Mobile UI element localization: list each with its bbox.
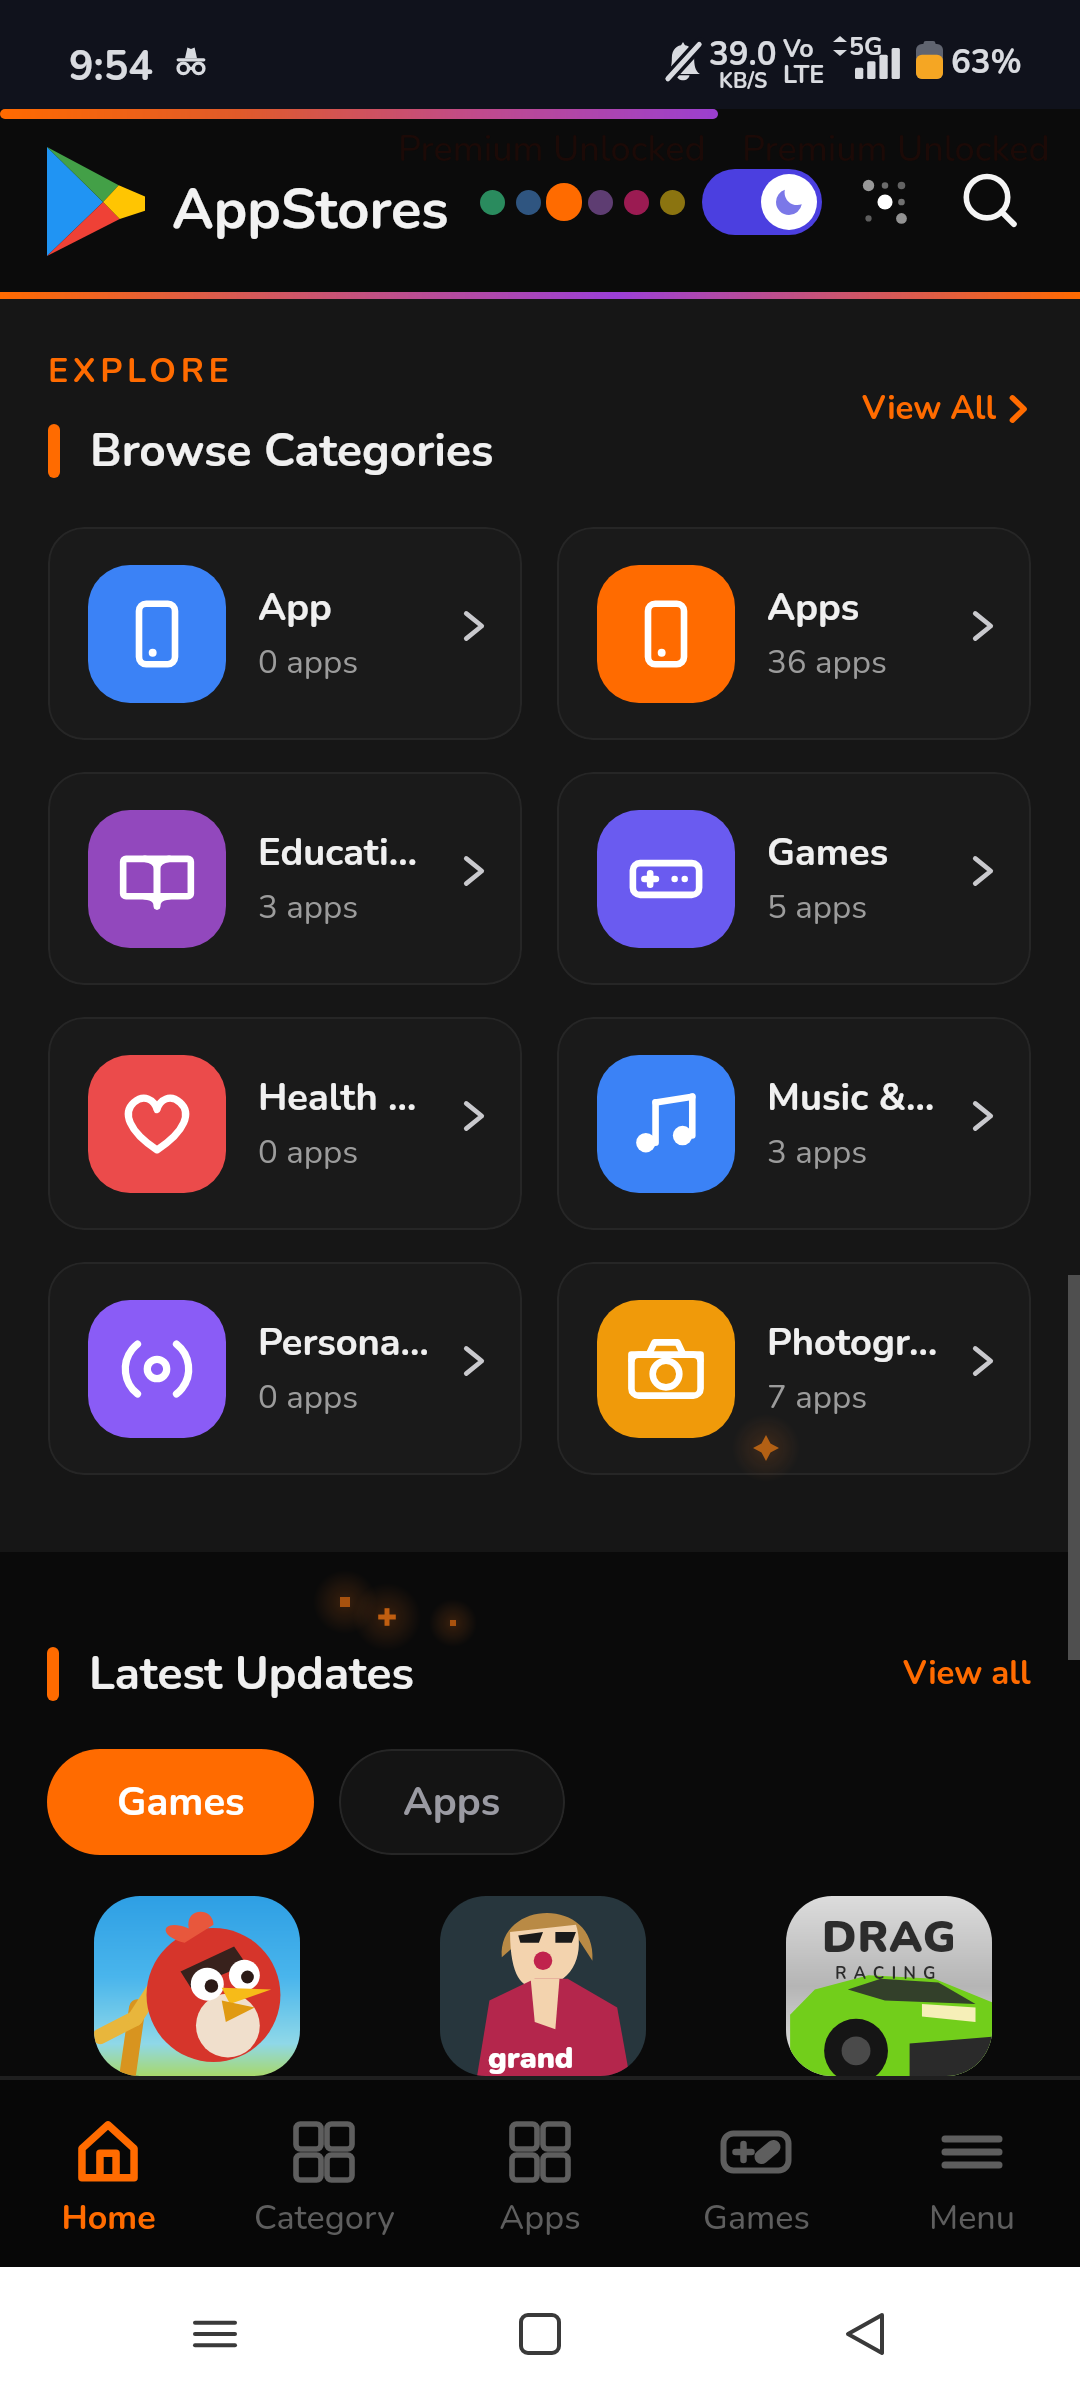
staticText: Games [703, 2195, 810, 2241]
button[interactable]: Apps grid [849, 166, 921, 238]
staticText: Persona… [258, 1317, 429, 1369]
button[interactable]: Back [830, 2299, 900, 2369]
staticText: DRAG [822, 1908, 957, 1968]
staticText: Games [767, 827, 889, 879]
staticText: Photogr… [767, 1317, 938, 1369]
button[interactable]: Persona… [48, 1262, 522, 1475]
staticText: Educati… [258, 827, 418, 879]
staticText: Vo [783, 32, 814, 66]
staticText: 63% [951, 40, 1022, 85]
staticText: 39.0 [709, 32, 777, 77]
staticText: Premium Unlocked [398, 125, 706, 174]
staticText: View All [862, 386, 996, 431]
button[interactable]: App [48, 527, 522, 740]
staticText: Health … [258, 1072, 417, 1124]
staticText: View all [903, 1651, 1031, 1696]
staticText: Menu [929, 2195, 1015, 2241]
staticText: 9:54 [69, 39, 153, 95]
staticText: LTE [783, 58, 825, 92]
staticText: RACING [835, 1962, 943, 1985]
staticText: 5G [849, 30, 883, 64]
button[interactable]: Theme colour [618, 181, 654, 223]
staticText: Browse Categories [90, 419, 494, 482]
button[interactable]: Apps [432, 2080, 648, 2267]
staticText: 5 apps [767, 885, 868, 930]
button[interactable]: Recents [180, 2299, 250, 2369]
button[interactable]: Dark mode toggle [702, 169, 822, 235]
button[interactable]: View all [892, 1645, 1032, 1702]
button[interactable]: Category [216, 2080, 432, 2267]
staticText: Apps [499, 2195, 581, 2241]
staticText: Apps [403, 1775, 501, 1830]
button[interactable]: View All [851, 422, 1027, 479]
button[interactable]: Music &… [557, 1017, 1031, 1230]
button[interactable]: Games [47, 1749, 314, 1855]
staticText: Apps [767, 582, 860, 634]
button[interactable]: Apps [339, 1749, 565, 1855]
button[interactable]: Educati… [48, 772, 522, 985]
button[interactable]: Angry Birds [94, 1896, 300, 2076]
button[interactable]: Home [505, 2299, 575, 2369]
staticText: 36 apps [767, 640, 887, 685]
staticText: 3 apps [767, 1130, 868, 1175]
staticText: Category [254, 2195, 395, 2241]
staticText: KB/S [719, 67, 768, 96]
staticText: 0 apps [258, 1375, 359, 1420]
button[interactable]: Photogr… [557, 1262, 1031, 1475]
button[interactable]: Theme colour [474, 181, 510, 223]
button[interactable]: Apps [557, 527, 1031, 740]
button[interactable]: Theme colour [546, 181, 582, 223]
staticText: Latest Updates [89, 1642, 414, 1705]
staticText: Games [117, 1775, 245, 1830]
staticText: 3 apps [258, 885, 359, 930]
button[interactable]: Home [0, 2080, 216, 2267]
staticText: 0 apps [258, 1130, 359, 1175]
button[interactable]: Games [557, 772, 1031, 985]
staticText: 0 apps [258, 640, 359, 685]
staticText: Premium Unlocked [742, 125, 1050, 174]
button[interactable]: Theme colour [510, 181, 546, 223]
staticText: 7 apps [767, 1375, 868, 1420]
button[interactable]: Menu [864, 2080, 1080, 2267]
button[interactable]: Search [954, 163, 1026, 235]
staticText: grand [488, 2038, 574, 2076]
button[interactable]: Grand Theft Auto III [440, 1896, 646, 2076]
staticText: App [258, 582, 332, 634]
button[interactable]: Theme colour [582, 181, 618, 223]
button[interactable]: Theme colour [654, 181, 690, 223]
staticText: EXPLORE [48, 348, 234, 394]
staticText: Home [61, 2195, 156, 2241]
button[interactable]: Games [648, 2080, 864, 2267]
button[interactable]: Health … [48, 1017, 522, 1230]
staticText: Music &… [767, 1072, 935, 1124]
staticText: AppStores [172, 171, 449, 247]
button[interactable]: Drag Racing [786, 1896, 992, 2076]
